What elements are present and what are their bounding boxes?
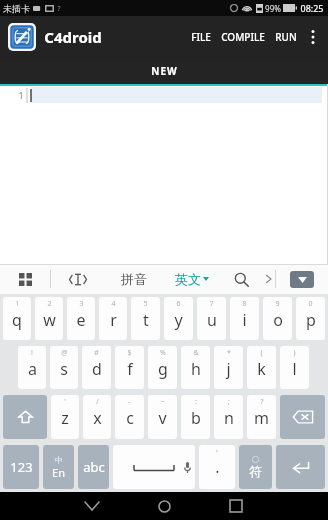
button[interactable]: More — [261, 264, 275, 294]
staticText: 5 — [143, 299, 148, 309]
button[interactable]: Back — [63, 492, 121, 520]
button[interactable]: 7 — [197, 297, 226, 340]
button[interactable]: $ — [115, 346, 144, 389]
staticText: b — [191, 407, 201, 429]
button[interactable]: - — [115, 395, 144, 439]
button[interactable]: ; — [214, 395, 243, 439]
button[interactable]: ~ — [148, 395, 177, 439]
staticText: 99% — [265, 3, 281, 14]
staticText: # — [94, 348, 99, 358]
button[interactable]: & — [181, 346, 210, 389]
button[interactable]: 9 — [263, 297, 292, 340]
staticText: 符 — [249, 463, 262, 479]
staticText: COMPILE — [221, 30, 265, 44]
button[interactable] — [113, 445, 195, 489]
button[interactable]: Recent apps — [207, 492, 265, 520]
button[interactable]: : — [181, 395, 210, 439]
button[interactable]: 英文 — [163, 264, 221, 294]
staticText: ? — [260, 397, 264, 407]
staticText: abc — [83, 458, 105, 476]
staticText: d — [92, 358, 102, 380]
staticText: j — [226, 358, 231, 380]
button[interactable] — [276, 445, 325, 489]
button[interactable]: ! — [18, 346, 46, 389]
button[interactable]: abc — [78, 445, 109, 489]
staticText: & — [193, 348, 199, 358]
staticText: q — [12, 309, 22, 331]
button[interactable]: Keyboard menu — [0, 264, 50, 294]
staticText: 英文 — [175, 271, 201, 287]
staticText: k — [257, 358, 266, 380]
staticText: ( — [260, 348, 263, 358]
staticText: f — [127, 358, 133, 380]
button[interactable]: % — [148, 346, 177, 389]
staticText: 1 — [15, 299, 20, 309]
staticText: 1 — [18, 89, 24, 101]
staticText: g — [158, 358, 168, 380]
button[interactable]: 5 — [131, 297, 160, 340]
button[interactable]: # — [82, 346, 111, 389]
staticText: - — [128, 397, 131, 407]
button[interactable]: 拼音 — [105, 264, 163, 294]
button[interactable]: COMPILE — [216, 24, 270, 50]
staticText: % — [160, 348, 166, 358]
button[interactable]: RUN — [270, 24, 302, 50]
staticText: · — [215, 461, 220, 483]
staticText: ' — [216, 448, 218, 459]
button[interactable]: 123 — [3, 445, 39, 489]
button[interactable]: * — [214, 346, 243, 389]
staticText: 0 — [308, 299, 313, 309]
staticText: 9 — [275, 299, 280, 309]
staticText: r — [110, 309, 117, 331]
staticText: 2 — [47, 299, 52, 309]
staticText: n — [224, 407, 234, 429]
button[interactable]: ) — [280, 346, 309, 389]
button[interactable]: Search — [221, 264, 261, 294]
button[interactable]: 6 — [164, 297, 193, 340]
button[interactable]: @ — [50, 346, 78, 389]
button[interactable]: ( — [247, 346, 276, 389]
button[interactable]: 中 — [43, 445, 74, 489]
button[interactable]: ' — [199, 445, 235, 489]
staticText: p — [306, 309, 316, 331]
staticText: v — [158, 407, 167, 429]
staticText: / — [96, 397, 99, 407]
staticText: ~ — [160, 397, 165, 407]
button[interactable]: 4 — [99, 297, 127, 340]
button[interactable]: Move cursor — [51, 264, 105, 294]
button[interactable]: 0 — [296, 297, 325, 340]
staticText: 7 — [209, 299, 214, 309]
staticText: 6 — [176, 299, 181, 309]
button[interactable]: 3 — [67, 297, 95, 340]
button[interactable]: ? — [247, 395, 276, 439]
staticText: 4 — [111, 299, 116, 309]
button[interactable]: 1 — [3, 297, 31, 340]
staticText: ! — [31, 348, 33, 358]
button[interactable]: Home — [135, 492, 193, 520]
staticText: x — [93, 407, 102, 429]
button[interactable]: 符 — [239, 445, 272, 489]
button[interactable]: / — [83, 395, 111, 439]
button[interactable]: 2 — [35, 297, 63, 340]
button[interactable] — [280, 395, 325, 439]
button[interactable]: NEW — [0, 58, 328, 84]
button[interactable] — [3, 395, 47, 439]
staticText: a — [28, 358, 37, 380]
staticText: @ — [61, 348, 68, 358]
button[interactable]: 8 — [230, 297, 259, 340]
staticText: 中 — [55, 455, 63, 465]
staticText: ? — [57, 4, 61, 14]
staticText: RUN — [275, 30, 297, 44]
staticText: C4droid — [44, 27, 102, 47]
button[interactable]: More options — [302, 20, 324, 54]
staticText: c — [126, 407, 134, 429]
button[interactable]: ' — [51, 395, 79, 439]
staticText: 未插卡 — [3, 3, 30, 14]
staticText: t — [143, 309, 149, 331]
button[interactable]: Hide keyboard — [276, 264, 328, 294]
staticText: ; — [228, 397, 230, 407]
staticText: FILE — [191, 30, 211, 44]
staticText: l — [292, 358, 297, 380]
button[interactable]: FILE — [186, 24, 216, 50]
staticText: $ — [127, 348, 132, 358]
